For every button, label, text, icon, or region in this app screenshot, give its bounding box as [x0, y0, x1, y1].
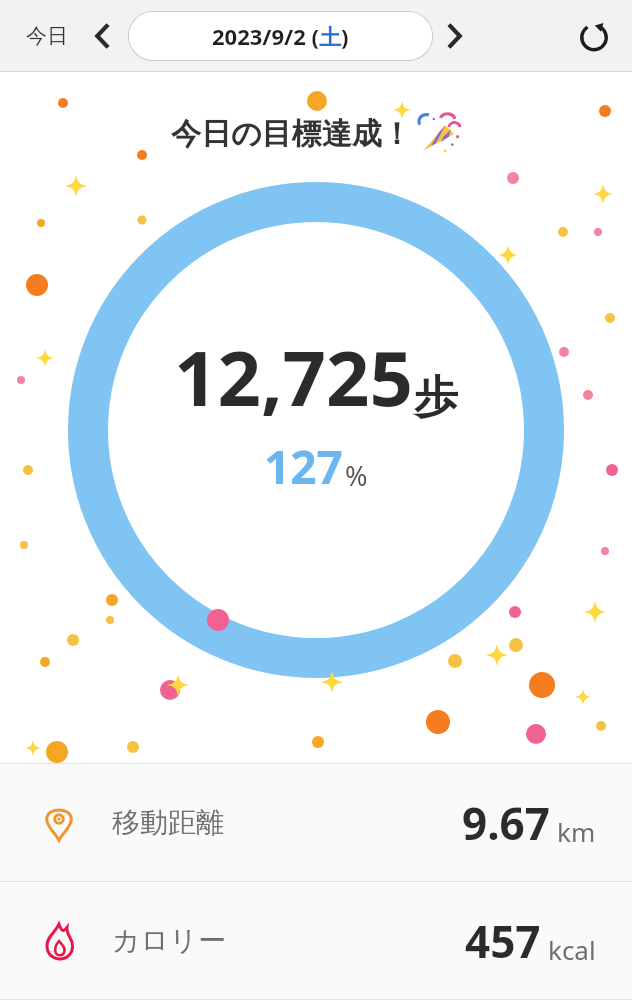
staticText: % [345, 457, 368, 494]
button[interactable]: 移動距離 [0, 764, 632, 881]
staticText: km [557, 814, 596, 849]
staticText: カロリー [112, 923, 226, 958]
button[interactable]: Next day [433, 15, 475, 57]
staticText: 移動距離 [112, 805, 224, 840]
staticText: 今日の目標達成！ [171, 115, 412, 153]
button[interactable]: 2023/9/2 (土) [128, 11, 433, 61]
staticText: 2023/9/2 (土) [212, 21, 349, 51]
staticText: 今日 [26, 23, 68, 49]
staticText: 127 [264, 435, 343, 498]
staticText: kcal [548, 932, 596, 967]
button[interactable]: カロリー [0, 882, 632, 999]
button[interactable]: Refresh [570, 12, 618, 60]
staticText: 12,725 [174, 325, 414, 429]
button[interactable]: 今日 [14, 15, 80, 57]
staticText: 歩 [414, 370, 458, 425]
button[interactable]: Previous day [80, 15, 126, 57]
staticText: 9.67 [462, 793, 550, 853]
staticText: 457 [465, 911, 541, 971]
